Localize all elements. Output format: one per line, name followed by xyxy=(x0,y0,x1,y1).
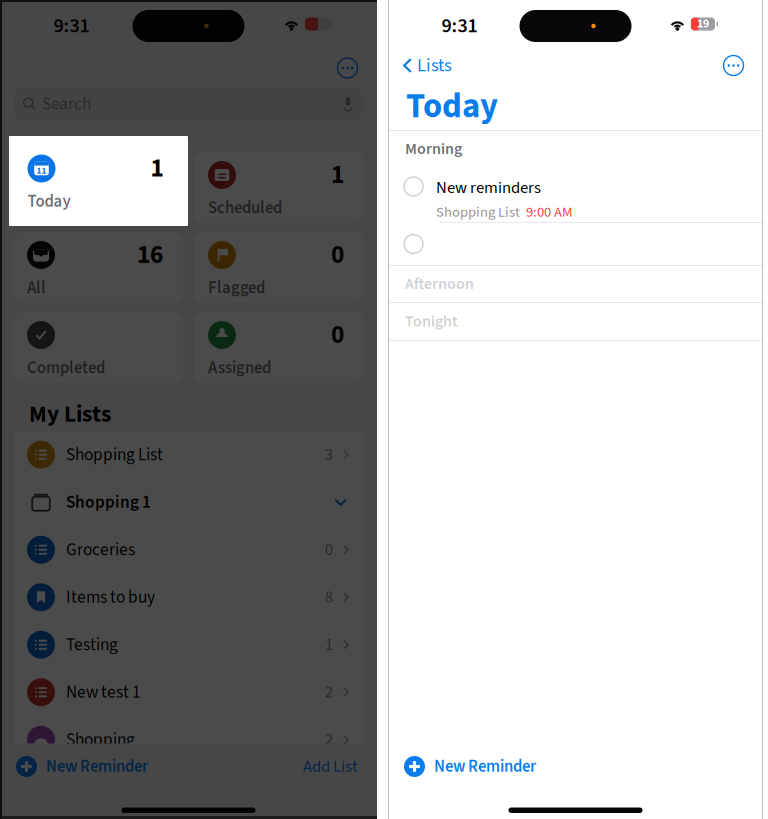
staticText: 1 xyxy=(150,157,163,193)
button[interactable]: Search xyxy=(14,88,363,120)
staticText: 9:00 AM xyxy=(526,202,573,223)
button[interactable]: Testing xyxy=(14,621,363,668)
staticText: My Lists xyxy=(29,398,111,431)
staticText: Shopping List xyxy=(436,202,520,223)
button[interactable]: New Reminder xyxy=(16,748,148,785)
staticText: 1 xyxy=(331,157,344,193)
staticText: Lists xyxy=(417,52,452,79)
staticText: 11 xyxy=(36,171,46,184)
staticText: Flagged xyxy=(208,276,265,300)
staticText: 0 xyxy=(331,317,344,353)
button[interactable]: 16 xyxy=(13,232,183,303)
staticText: Shopping List xyxy=(66,442,163,467)
button[interactable]: New test 1 xyxy=(14,668,363,716)
staticText: 11 xyxy=(36,164,46,178)
button[interactable]: 11 xyxy=(13,145,183,216)
button[interactable]: More options xyxy=(337,57,358,78)
staticText: New Reminder xyxy=(434,755,536,778)
staticText: Testing xyxy=(66,632,118,657)
button[interactable]: New reminders xyxy=(388,167,763,222)
staticText: New Reminder xyxy=(46,755,148,778)
staticText: Assigned xyxy=(208,356,271,380)
staticText: Today xyxy=(27,196,70,220)
button[interactable]: New Reminder xyxy=(404,748,536,785)
staticText: New test 1 xyxy=(66,680,141,705)
staticText: Groceries xyxy=(66,537,135,562)
staticText: Afternoon xyxy=(405,273,474,295)
staticText: 1 xyxy=(325,633,333,657)
staticText: All xyxy=(27,276,46,300)
button[interactable] xyxy=(13,312,183,383)
button[interactable]: More options xyxy=(723,55,744,76)
staticText: Add List xyxy=(303,755,358,778)
staticText: Tonight xyxy=(405,310,458,333)
button[interactable]: 1 xyxy=(194,152,364,223)
staticText: 9:31 xyxy=(53,12,89,40)
staticText: 16 xyxy=(137,237,163,273)
button[interactable]: Shopping 1 xyxy=(14,478,363,526)
staticText: Today xyxy=(406,82,498,131)
staticText: 19 xyxy=(697,15,709,32)
button[interactable]: Items to buy xyxy=(14,573,363,621)
button[interactable]: Shopping List xyxy=(14,431,363,478)
staticText: 2 xyxy=(325,680,333,704)
staticText: 9:31 xyxy=(441,12,477,40)
staticText: 2 xyxy=(325,728,333,752)
staticText: Search xyxy=(42,92,91,116)
button[interactable]: Add List xyxy=(303,748,358,785)
button[interactable]: 0 xyxy=(194,312,364,383)
button[interactable]: Groceries xyxy=(14,526,363,573)
staticText: 3 xyxy=(325,443,333,467)
button[interactable]: 11 xyxy=(13,152,183,223)
staticText: Today xyxy=(27,190,70,213)
staticText: Shopping 1 xyxy=(66,490,151,515)
staticText: Completed xyxy=(27,356,105,380)
button[interactable]: Shopping xyxy=(14,716,363,763)
staticText: Morning xyxy=(405,138,462,160)
staticText: Scheduled xyxy=(208,196,282,220)
button[interactable]: 0 xyxy=(194,232,364,303)
staticText: 1 xyxy=(150,150,163,187)
button[interactable]: Lists xyxy=(403,47,452,84)
button[interactable] xyxy=(388,223,763,265)
staticText: New reminders xyxy=(436,176,541,200)
staticText: 0 xyxy=(331,237,344,273)
staticText: 8 xyxy=(325,585,333,609)
staticText: Items to buy xyxy=(66,585,155,610)
staticText: 0 xyxy=(325,538,333,562)
staticText: Shopping xyxy=(66,727,135,752)
